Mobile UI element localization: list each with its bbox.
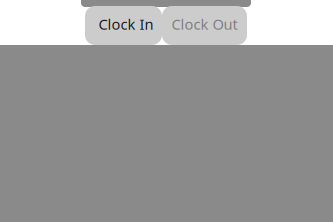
staticText: Clock In bbox=[98, 14, 153, 34]
staticText: Clock Out bbox=[171, 14, 237, 34]
button[interactable]: Clock Out bbox=[162, 6, 247, 45]
button[interactable]: Clock In bbox=[85, 6, 162, 45]
